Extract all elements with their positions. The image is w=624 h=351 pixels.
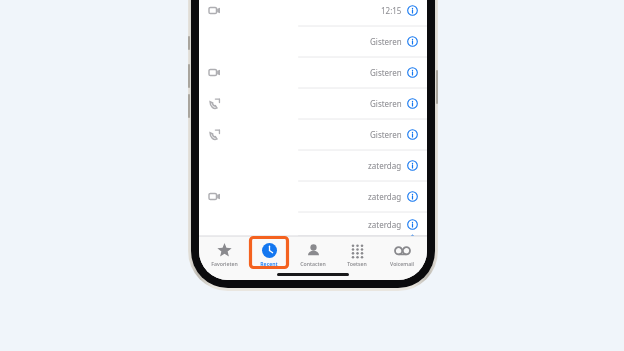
button[interactable]: Info	[407, 191, 418, 202]
button[interactable]: Info	[407, 98, 418, 109]
button[interactable]: Recent	[250, 239, 288, 267]
button[interactable]: Gisteren	[199, 57, 427, 88]
staticText: Favorieten	[211, 260, 238, 267]
button[interactable]: Voicemail	[383, 239, 421, 267]
button[interactable]: Info	[407, 36, 418, 47]
button[interactable]: zaterdag	[199, 181, 427, 212]
staticText: Recent	[260, 260, 278, 267]
button[interactable]: Gisteren	[199, 88, 427, 119]
button[interactable]: Info	[407, 67, 418, 78]
staticText: Gisteren	[370, 67, 402, 78]
staticText: zaterdag	[368, 160, 402, 171]
staticText: 12:15	[381, 5, 402, 16]
button[interactable]: Info	[407, 160, 418, 171]
button[interactable]: Toetsen	[338, 239, 376, 267]
button[interactable]: Favorieten	[205, 239, 243, 267]
staticText: zaterdag	[368, 219, 402, 230]
button[interactable]: zaterdag	[199, 212, 427, 236]
button[interactable]: Gisteren	[199, 26, 427, 57]
staticText: Gisteren	[370, 129, 402, 140]
staticText: zaterdag	[368, 191, 402, 202]
button[interactable]: Info	[407, 219, 418, 230]
staticText: Gisteren	[370, 98, 402, 109]
button[interactable]: Info	[407, 5, 418, 16]
staticText: Voicemail	[390, 260, 414, 267]
button[interactable]: Contacten	[294, 239, 332, 267]
button[interactable]: Gisteren	[199, 119, 427, 150]
button[interactable]: 12:15	[199, 0, 427, 26]
staticText: Toetsen	[347, 260, 367, 267]
button[interactable]: zaterdag	[199, 150, 427, 181]
button[interactable]: Info	[407, 129, 418, 140]
staticText: Gisteren	[370, 36, 402, 47]
staticText: Contacten	[300, 260, 326, 267]
